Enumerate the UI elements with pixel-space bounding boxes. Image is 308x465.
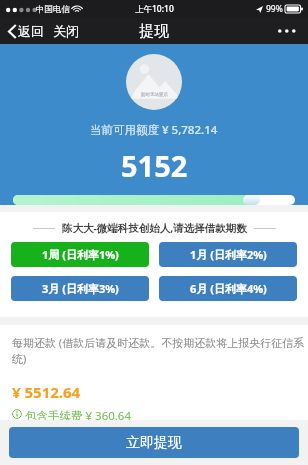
- staticText: 中国电信: [36, 4, 70, 15]
- staticText: 提现: [139, 22, 169, 41]
- staticText: 当前可用额度 ¥ 5,782.14: [90, 122, 218, 138]
- staticText: 陈大大-微端科技创始人,请选择借款期数: [62, 221, 247, 235]
- button[interactable]: 1周 (日利率1%): [11, 242, 149, 267]
- staticText: 5152: [121, 146, 188, 185]
- staticText: 3月 (日利率3%): [42, 281, 119, 296]
- staticText: 暂时无法显示: [141, 92, 168, 98]
- staticText: 包含手续费 ¥ 360.64: [25, 408, 132, 420]
- staticText: 关闭: [53, 23, 79, 39]
- staticText: 6月 (日利率4%): [190, 281, 267, 296]
- button[interactable]: 返回: [7, 20, 46, 42]
- button[interactable]: 3月 (日利率3%): [11, 276, 149, 301]
- staticText: 立即提现: [126, 434, 182, 452]
- staticText: 1周 (日利率1%): [42, 247, 119, 262]
- button[interactable]: More options: [273, 24, 300, 38]
- staticText: ¥ 5512.64: [12, 382, 81, 402]
- button[interactable]: 关闭: [51, 20, 81, 42]
- staticText: 上午10:10: [135, 3, 174, 15]
- button[interactable]: 立即提现: [9, 427, 299, 458]
- staticText: 99%: [266, 3, 283, 15]
- staticText: 每期还款 (借款后请及时还款。不按期还款将上报央行征信系统): [12, 335, 308, 366]
- button[interactable]: 6月 (日利率4%): [159, 276, 297, 301]
- button[interactable]: 1月 (日利率2%): [159, 242, 297, 267]
- staticText: 1月 (日利率2%): [190, 247, 267, 262]
- staticText: 返回: [18, 23, 44, 39]
- button[interactable]: Amount slider: [13, 195, 295, 205]
